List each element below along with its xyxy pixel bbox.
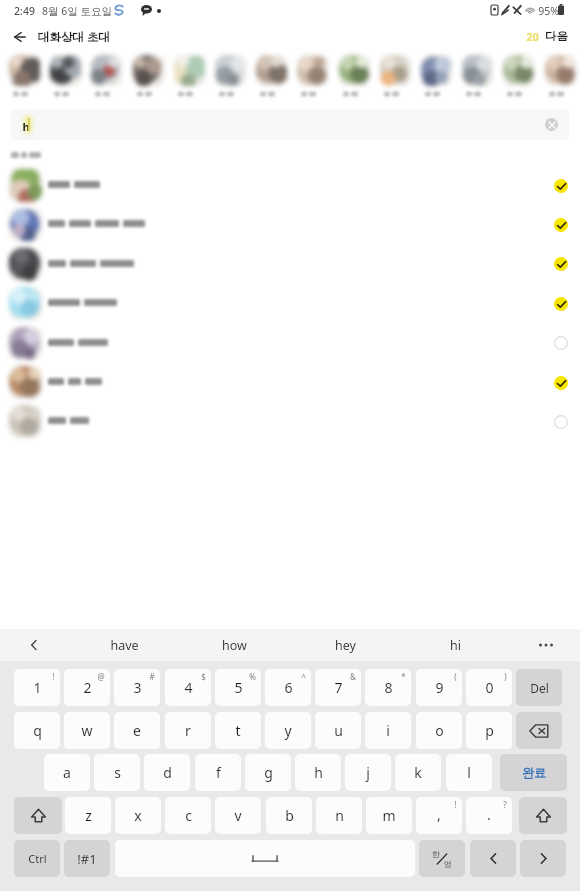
button[interactable]: Selected friend — [9, 55, 40, 86]
other: Selected — [554, 257, 568, 271]
staticText: !#1 — [77, 850, 97, 868]
button[interactable]: Selected friend — [462, 55, 493, 86]
button[interactable]: Selected friend — [174, 55, 205, 86]
button[interactable]: 20 — [526, 22, 578, 50]
button[interactable]: Selected friend — [380, 55, 411, 86]
button[interactable] — [0, 363, 580, 402]
button[interactable]: f — [195, 754, 241, 791]
button[interactable]: Selected friend — [215, 55, 246, 86]
button[interactable]: s — [94, 754, 140, 791]
button[interactable]: h — [295, 754, 341, 791]
button[interactable]: 9 — [416, 669, 462, 706]
staticText: Ctrl — [28, 851, 47, 866]
button[interactable]: v — [215, 797, 261, 834]
staticText: 9 — [435, 678, 444, 697]
button[interactable]: Control — [14, 840, 60, 877]
button[interactable]: k — [395, 754, 441, 791]
button[interactable]: b — [266, 797, 312, 834]
button[interactable]: Selected friend — [256, 55, 287, 86]
button[interactable]: p — [466, 712, 512, 749]
button[interactable]: q — [14, 712, 60, 749]
button[interactable]: Previous suggestions — [14, 629, 54, 661]
button[interactable]: Selected friend — [503, 55, 534, 86]
staticText: h — [22, 119, 30, 134]
button[interactable]: 6 — [265, 669, 311, 706]
button[interactable]: Shift — [14, 797, 62, 834]
button[interactable]: Selected friend — [421, 55, 452, 86]
button[interactable]: e — [114, 712, 160, 749]
button[interactable]: 4 — [165, 669, 211, 706]
button[interactable]: 완료 — [500, 754, 567, 791]
button[interactable] — [0, 324, 580, 363]
staticText: $ — [201, 671, 206, 682]
button[interactable]: u — [315, 712, 361, 749]
staticText: have — [110, 637, 139, 654]
button[interactable]: Back — [8, 26, 30, 48]
button[interactable] — [0, 402, 580, 441]
staticText: r — [185, 721, 191, 740]
button[interactable]: t — [215, 712, 261, 749]
button[interactable]: how — [186, 629, 282, 661]
staticText: f — [216, 763, 221, 782]
button[interactable] — [0, 245, 580, 284]
button[interactable]: Selected friend — [545, 55, 576, 86]
button[interactable]: c — [165, 797, 211, 834]
button[interactable]: 5 — [215, 669, 261, 706]
button[interactable]: Del — [516, 669, 562, 706]
button[interactable]: hi — [407, 629, 503, 661]
button[interactable]: Selected friend — [133, 55, 164, 86]
button[interactable]: d — [144, 754, 190, 791]
button[interactable]: 8 — [365, 669, 411, 706]
button[interactable]: Previous — [470, 840, 516, 877]
button[interactable]: Selected friend — [91, 55, 122, 86]
button[interactable] — [0, 284, 580, 323]
button[interactable]: 0 — [466, 669, 512, 706]
staticText: , — [437, 805, 441, 824]
staticText: o — [435, 721, 444, 740]
button[interactable]: j — [345, 754, 391, 791]
button[interactable]: h — [11, 109, 569, 140]
button[interactable]: Backspace — [516, 712, 562, 749]
button[interactable]: 2 — [64, 669, 110, 706]
staticText: t — [235, 721, 241, 740]
button[interactable]: 1 — [14, 669, 60, 706]
button[interactable]: 7 — [315, 669, 361, 706]
button[interactable]: l — [446, 754, 492, 791]
button[interactable]: z — [65, 797, 111, 834]
button[interactable]: n — [316, 797, 362, 834]
button[interactable]: hey — [297, 629, 393, 661]
button[interactable] — [0, 205, 580, 244]
button[interactable]: g — [245, 754, 291, 791]
button[interactable]: !#1 — [64, 840, 110, 877]
other: Selected — [554, 218, 568, 232]
button[interactable]: Selected friend — [50, 55, 81, 86]
button[interactable]: Space — [115, 840, 415, 877]
button[interactable]: More options — [526, 629, 566, 661]
button[interactable]: . — [466, 797, 512, 834]
button[interactable]: y — [265, 712, 311, 749]
button[interactable]: m — [366, 797, 412, 834]
button[interactable]: Shift — [519, 797, 567, 834]
staticText: 완료 — [522, 765, 546, 780]
staticText: b — [285, 806, 294, 825]
staticText: @ — [97, 671, 105, 682]
staticText: c — [185, 806, 192, 825]
button[interactable]: Language — [419, 840, 465, 877]
button[interactable]: w — [64, 712, 110, 749]
button[interactable]: have — [76, 629, 172, 661]
button[interactable]: a — [44, 754, 90, 791]
staticText: 0 — [485, 678, 494, 697]
button[interactable]: Next — [520, 840, 566, 877]
button[interactable]: , — [416, 797, 462, 834]
button[interactable]: 3 — [114, 669, 160, 706]
button[interactable]: Selected friend — [297, 55, 328, 86]
staticText: s — [114, 763, 121, 782]
button[interactable]: x — [115, 797, 161, 834]
staticText: e — [133, 721, 141, 740]
button[interactable]: Selected friend — [339, 55, 370, 86]
button[interactable]: i — [365, 712, 411, 749]
button[interactable]: r — [165, 712, 211, 749]
button[interactable] — [0, 166, 580, 205]
button[interactable]: o — [416, 712, 462, 749]
other: Selected — [554, 376, 568, 390]
